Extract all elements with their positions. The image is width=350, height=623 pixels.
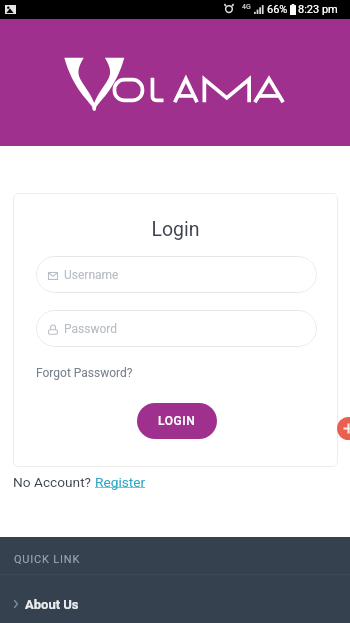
button[interactable]: Add — [337, 417, 350, 440]
staticText: 4G — [242, 3, 251, 11]
staticText: Password — [64, 322, 118, 336]
staticText: 8:23 pm — [298, 3, 338, 16]
button[interactable]: LOGIN — [137, 403, 217, 439]
button[interactable]: Forgot Password? — [36, 366, 133, 380]
staticText: 66% — [267, 3, 288, 16]
staticText: About Us — [25, 597, 79, 612]
staticText: LOGIN — [158, 414, 196, 428]
button[interactable]: Password — [36, 310, 317, 347]
button[interactable]: Register — [95, 474, 146, 490]
button[interactable]: About Us — [0, 575, 350, 623]
button[interactable]: Username — [36, 256, 317, 293]
staticText: Username — [64, 268, 119, 282]
staticText: QUICK LINK — [14, 553, 81, 566]
staticText: Login — [13, 218, 338, 241]
staticText: No Account? — [13, 474, 95, 490]
